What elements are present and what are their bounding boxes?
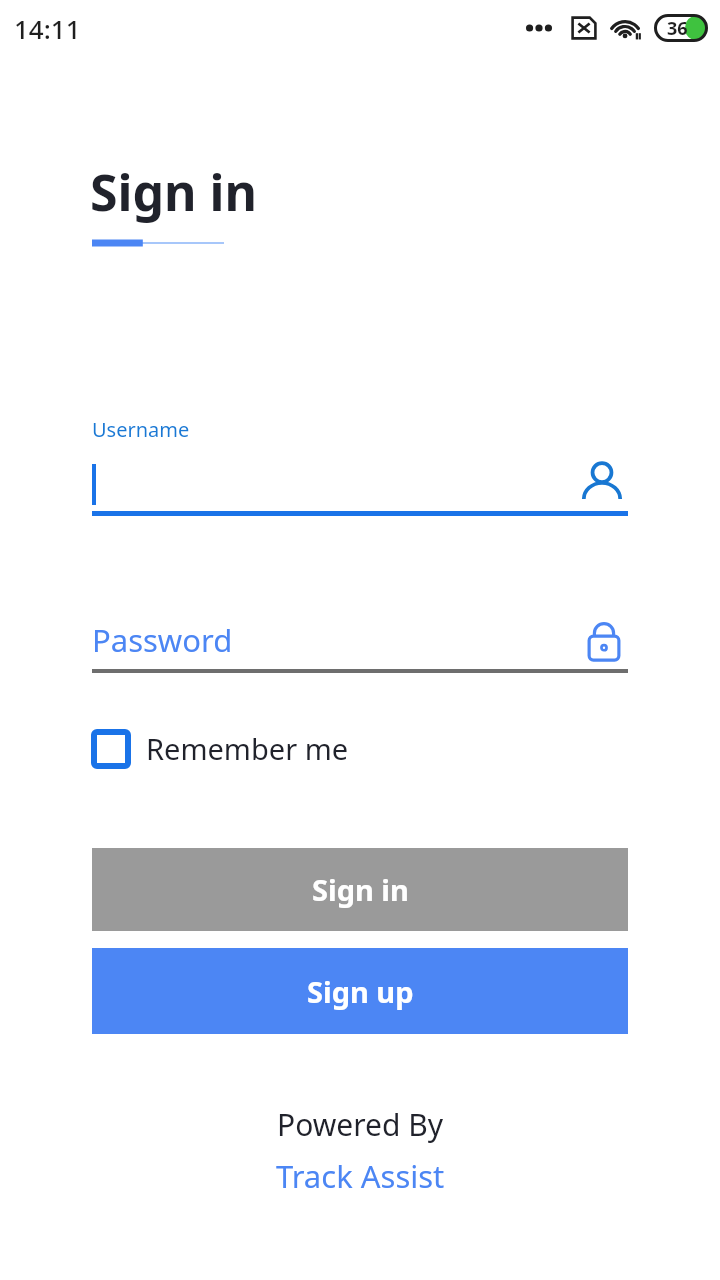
staticText: Powered By [277, 1104, 443, 1145]
button[interactable]: Password [92, 611, 628, 673]
button[interactable]: Track Assist [276, 1155, 445, 1197]
staticText: Password [92, 619, 233, 661]
other: Username [576, 457, 628, 509]
button[interactable]: Sign up [92, 948, 628, 1034]
staticText: Sign up [307, 972, 414, 1011]
other: Password [580, 616, 628, 664]
button[interactable]: Sign in [92, 848, 628, 931]
button[interactable]: Remember me [92, 727, 361, 770]
button[interactable]: Username [92, 416, 628, 516]
staticText: Sign in [312, 870, 409, 909]
staticText: 14:11 [14, 11, 81, 46]
staticText: Sign in [90, 158, 258, 226]
staticText: Username [92, 416, 190, 443]
staticText: 36 [667, 16, 688, 41]
staticText: Track Assist [276, 1155, 445, 1197]
staticText: Remember me [146, 729, 349, 768]
